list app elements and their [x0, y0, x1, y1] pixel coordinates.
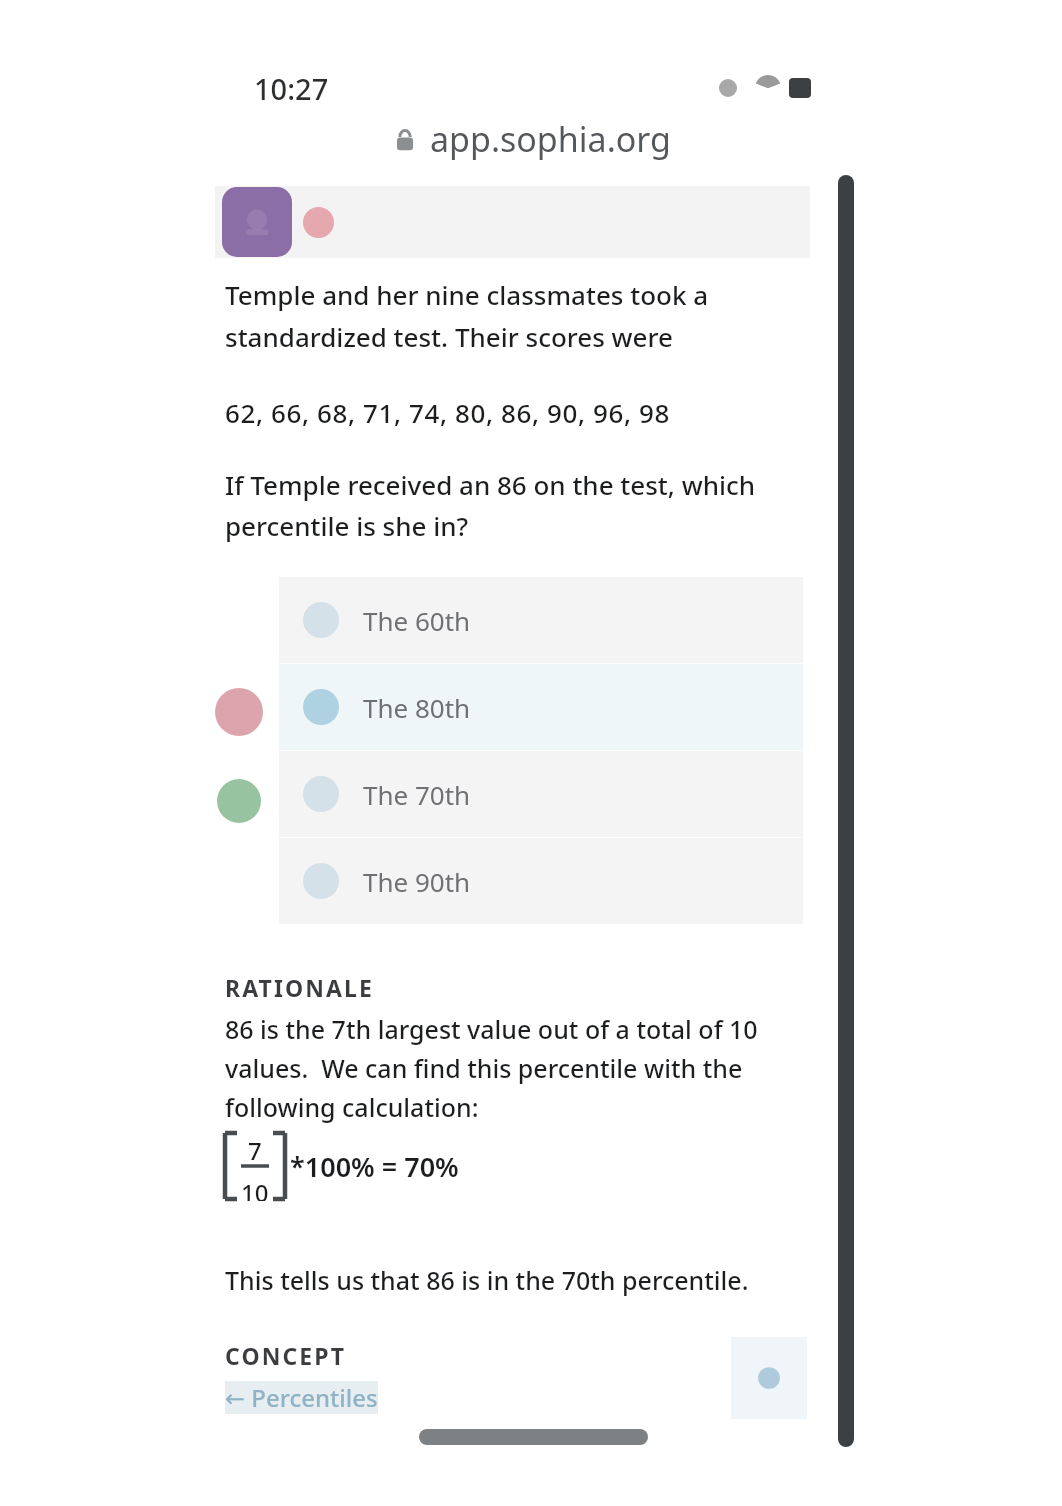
staticText: 86 is the 7th largest value out of a tot… [225, 1012, 758, 1124]
staticText: 62, 66, 68, 71, 74, 80, 86, 90, 96, 98 [225, 395, 670, 430]
button[interactable]: The 60th [279, 577, 803, 663]
staticText: The 70th [363, 777, 471, 812]
staticText: 10 [241, 1176, 269, 1201]
staticText: *100% = 70% [290, 1148, 459, 1185]
button[interactable]: ← Percentiles [225, 1381, 378, 1414]
button[interactable]: Home gesture bar [419, 1429, 648, 1445]
button[interactable]: Next [731, 1337, 807, 1419]
button[interactable]: Address bar: app.sophia.org [0, 113, 1062, 165]
staticText: 10:27 [254, 69, 329, 108]
button[interactable]: Notification [303, 207, 334, 238]
staticText: This tells us that 86 is in the 70th per… [225, 1263, 749, 1297]
staticText: RATIONALE [225, 972, 375, 1003]
staticText: app.sophia.org [430, 116, 671, 162]
staticText: ← Percentiles [225, 1381, 378, 1414]
button[interactable]: App logo [222, 187, 292, 257]
staticText: 7 [248, 1134, 262, 1167]
button[interactable]: The 90th [279, 838, 803, 924]
button[interactable]: The 70th [279, 751, 803, 837]
staticText: CONCEPT [225, 1340, 347, 1371]
staticText: The 90th [363, 864, 471, 899]
staticText: The 60th [363, 603, 471, 638]
staticText: Temple and her nine classmates took a st… [225, 277, 709, 355]
staticText: The 80th [363, 690, 471, 725]
staticText: If Temple received an 86 on the test, wh… [225, 467, 756, 544]
button[interactable]: The 80th [279, 664, 803, 750]
